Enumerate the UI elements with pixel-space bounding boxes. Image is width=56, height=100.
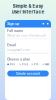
staticText: Simple & Easy (12, 3, 43, 9)
staticText: Free (10, 63, 16, 66)
staticText: Email (7, 43, 16, 47)
staticText: you@mail.com (7, 48, 29, 52)
button[interactable]: Free (7, 63, 15, 66)
button[interactable]: Max (42, 63, 49, 66)
staticText: Plus (22, 63, 28, 66)
staticText: What do your friends call you? (7, 34, 49, 37)
staticText: Pro (34, 63, 39, 66)
staticText: Full name (7, 29, 23, 33)
button[interactable]: Pro (31, 63, 39, 66)
staticText: Sign up (7, 22, 19, 26)
button[interactable]: Search (42, 23, 44, 24)
staticText: User Interface (11, 9, 44, 15)
staticText: Create account (16, 72, 40, 75)
button[interactable]: Create account (7, 71, 49, 77)
staticText: Max (45, 63, 49, 66)
staticText: Choose a plan (7, 58, 30, 61)
button[interactable]: Plus (19, 63, 28, 66)
